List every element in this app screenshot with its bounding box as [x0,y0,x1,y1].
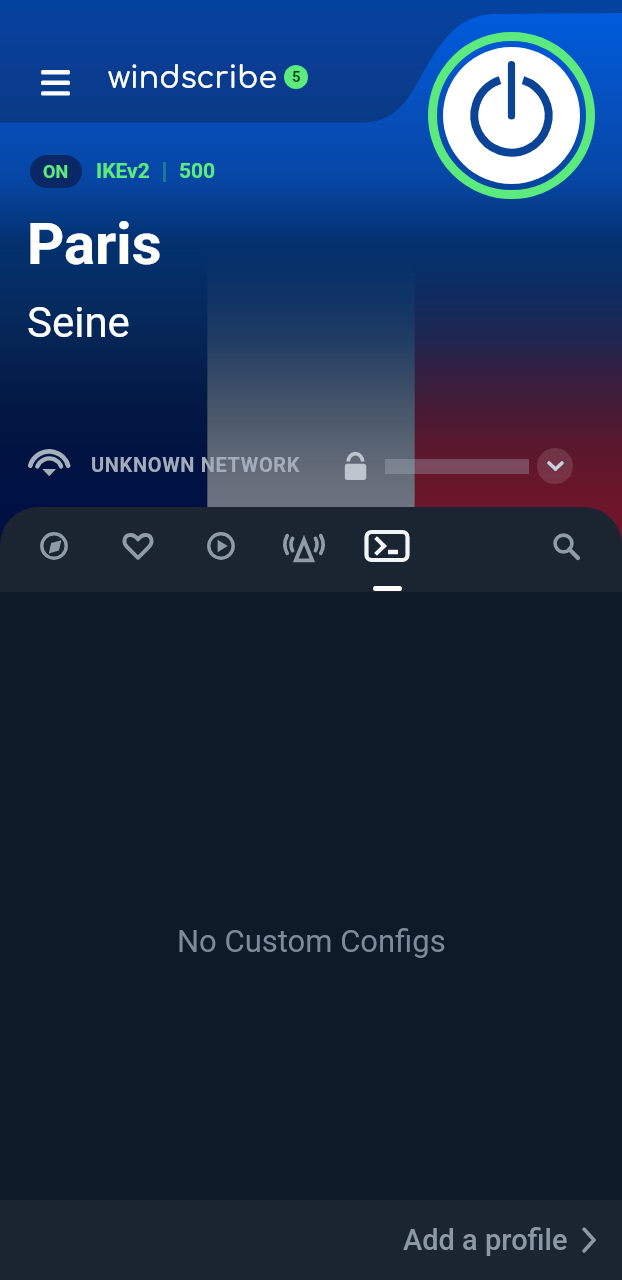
button[interactable]: Static IPs [268,511,340,592]
staticText: No Custom Configs [177,923,446,959]
staticText: Add a profile [403,1223,568,1257]
button[interactable]: Search [529,511,601,592]
button[interactable]: Add a profile [0,1200,622,1280]
button[interactable]: Power [428,32,595,199]
button[interactable]: Menu [31,58,79,106]
button[interactable]: Config files [351,511,423,592]
staticText: UNKNOWN NETWORK [91,453,301,476]
button[interactable]: Locations [18,511,90,592]
staticText: Paris [27,210,162,278]
button[interactable]: ON [30,155,82,188]
staticText: Seine [27,298,130,347]
staticText: 5 [292,68,301,86]
button[interactable]: Streaming [185,511,257,592]
button[interactable]: Favourites [102,511,174,592]
staticText: 500 [179,159,216,184]
staticText: windscribe [108,62,277,95]
staticText: ON [43,161,69,182]
button[interactable]: Expand [537,448,573,484]
staticText: IKEv2 [96,159,150,184]
